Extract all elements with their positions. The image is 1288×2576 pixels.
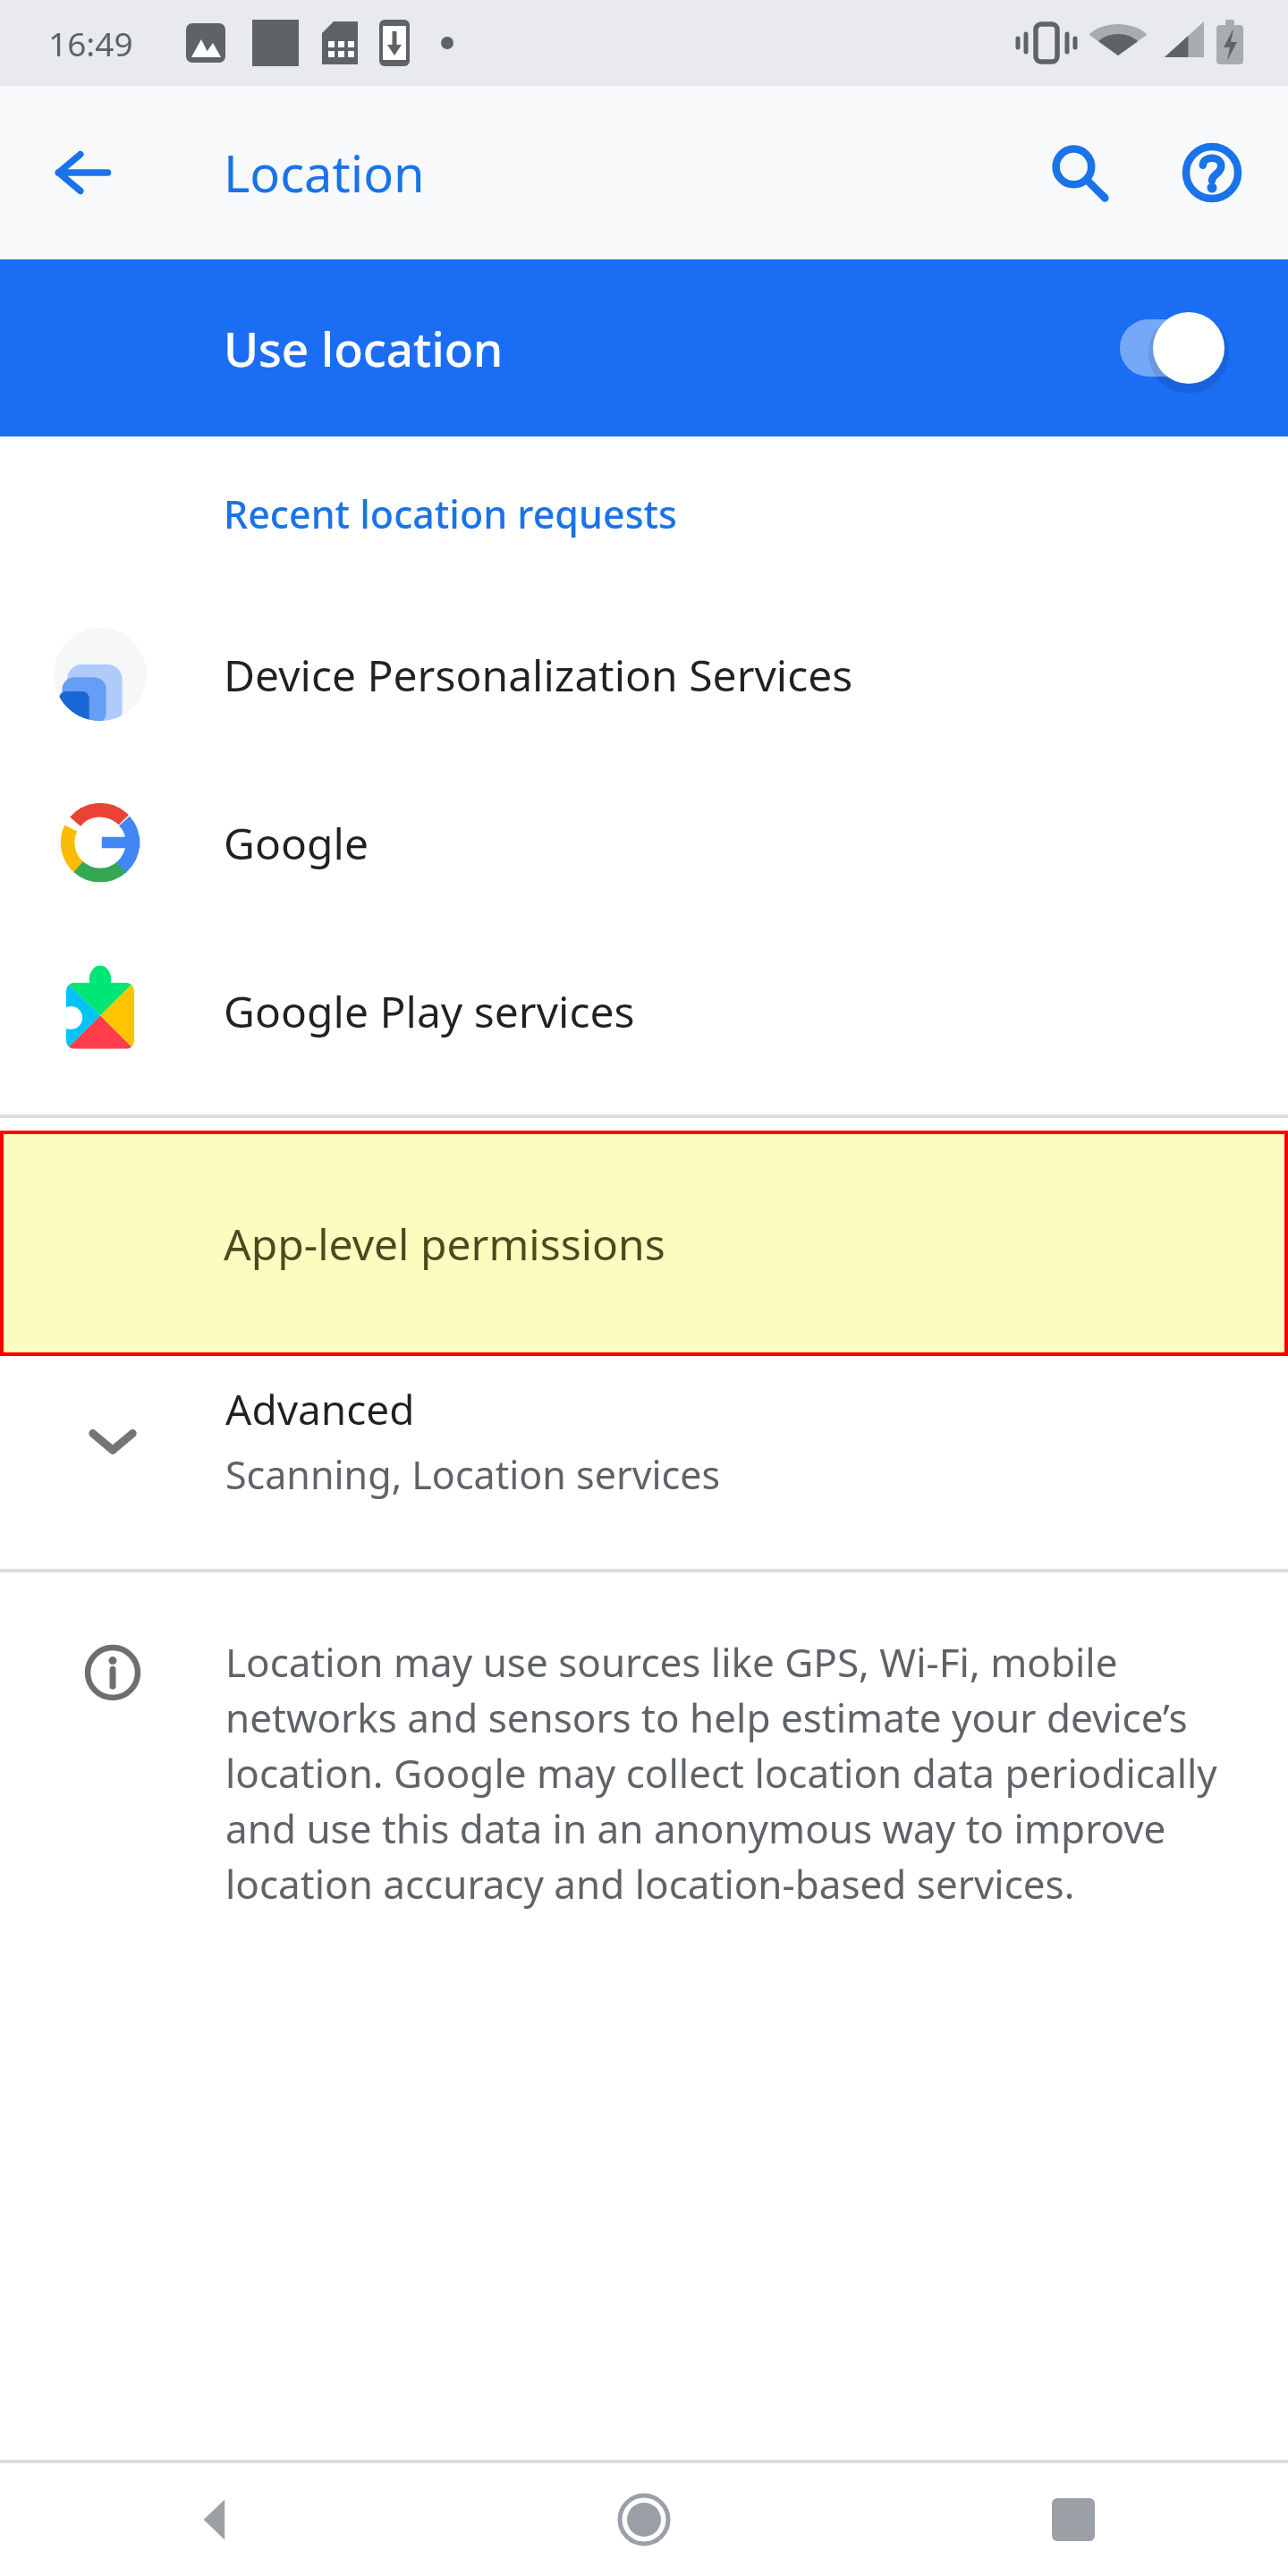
staticText: Use location xyxy=(224,316,504,380)
button[interactable]: Use location xyxy=(0,259,1288,436)
button[interactable]: Advanced xyxy=(0,1356,1288,1526)
button[interactable]: Google xyxy=(0,758,1288,927)
button[interactable]: Help xyxy=(1161,122,1263,224)
staticText: Recent location requests xyxy=(224,487,677,540)
button[interactable]: Back xyxy=(0,2463,429,2576)
staticText: Location may use sources like GPS, Wi-Fi… xyxy=(225,1635,1236,1911)
button[interactable]: Google Play services xyxy=(0,927,1288,1095)
button[interactable]: Home xyxy=(429,2463,859,2576)
staticText: Google Play services xyxy=(224,982,635,1040)
button[interactable]: Back xyxy=(32,122,134,224)
staticText: Advanced xyxy=(225,1381,415,1437)
button[interactable]: Search xyxy=(1029,122,1131,224)
button[interactable]: Recent apps xyxy=(859,2463,1288,2576)
staticText: App-level permissions xyxy=(224,1215,665,1273)
staticText: 16:49 xyxy=(48,21,133,65)
staticText: Scanning, Location services xyxy=(225,1448,721,1501)
staticText: Google xyxy=(224,814,369,872)
staticText: Location xyxy=(224,139,425,207)
button[interactable]: App-level permissions xyxy=(4,1134,1284,1352)
button[interactable]: Device Personalization Services xyxy=(0,590,1288,758)
staticText: Device Personalization Services xyxy=(224,646,853,704)
